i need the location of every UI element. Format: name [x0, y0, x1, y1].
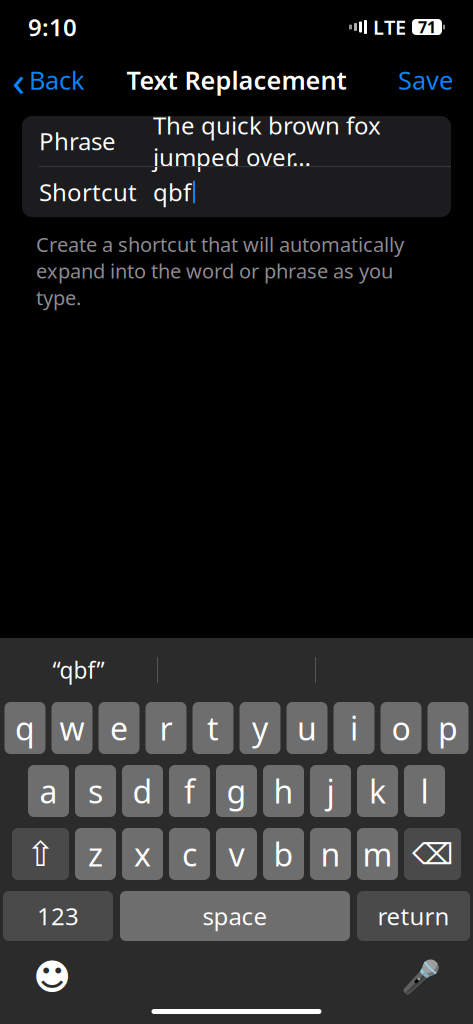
staticText: s — [88, 770, 103, 812]
staticText: LTE — [373, 14, 406, 40]
staticText: o — [391, 707, 410, 749]
staticText: x — [134, 833, 151, 875]
staticText: “qbf” — [52, 655, 104, 685]
staticText: f — [184, 770, 195, 812]
staticText: ⌫ — [412, 837, 453, 871]
button[interactable]: e — [98, 702, 139, 754]
staticText: b — [273, 833, 293, 875]
staticText: z — [88, 833, 103, 875]
staticText: 123 — [37, 900, 79, 932]
staticText: Shortcut — [39, 176, 137, 208]
button[interactable]: Emoji — [26, 951, 78, 1003]
button[interactable]: q — [4, 702, 45, 754]
button[interactable]: j — [310, 765, 351, 817]
button[interactable]: v — [216, 828, 257, 880]
button[interactable]: k — [357, 765, 398, 817]
button[interactable]: ‹ — [0, 46, 85, 114]
staticText: t — [207, 707, 219, 749]
button[interactable]: return — [357, 891, 470, 941]
staticText: 🎤 — [401, 959, 441, 995]
button[interactable]: a — [28, 765, 69, 817]
staticText: Text Replacement — [126, 63, 346, 97]
staticText: e — [110, 707, 128, 749]
staticText: g — [226, 770, 246, 812]
button[interactable]: n — [310, 828, 351, 880]
button[interactable]: m — [357, 828, 398, 880]
button[interactable]: 123 — [3, 891, 113, 941]
staticText: v — [228, 833, 244, 875]
button[interactable]: s — [75, 765, 116, 817]
staticText: k — [369, 770, 386, 812]
button[interactable]: r — [145, 702, 186, 754]
staticText: q — [15, 707, 35, 749]
button[interactable]: z — [75, 828, 116, 880]
button[interactable]: c — [169, 828, 210, 880]
staticText: Save — [398, 63, 453, 97]
button[interactable]: l — [404, 765, 445, 817]
staticText: u — [297, 707, 317, 749]
staticText: i — [350, 707, 358, 749]
staticText: d — [132, 770, 152, 812]
staticText: n — [320, 833, 340, 875]
staticText: c — [182, 833, 197, 875]
staticText: 71 — [418, 16, 436, 38]
button[interactable]: x — [122, 828, 163, 880]
staticText: l — [420, 770, 428, 812]
staticText: Back — [29, 63, 85, 97]
staticText: ⇧ — [26, 834, 55, 874]
button[interactable]: b — [263, 828, 304, 880]
button[interactable]: i — [333, 702, 374, 754]
staticText: return — [377, 900, 449, 932]
button[interactable]: Delete — [404, 828, 461, 880]
staticText: 9:10 — [28, 11, 77, 43]
staticText: space — [202, 900, 267, 932]
button[interactable]: p — [427, 702, 468, 754]
staticText: j — [326, 770, 334, 812]
button[interactable]: u — [286, 702, 327, 754]
staticText: y — [252, 707, 268, 749]
staticText: qbf — [153, 176, 191, 208]
staticText: a — [39, 770, 57, 812]
button[interactable]: f — [169, 765, 210, 817]
staticText: The quick brown fox jumped over… — [153, 109, 381, 173]
button[interactable]: d — [122, 765, 163, 817]
button[interactable]: t — [192, 702, 233, 754]
staticText: Create a shortcut that will automaticall… — [36, 231, 404, 311]
button[interactable]: Shortcut — [22, 167, 451, 217]
staticText: ☺ — [30, 953, 74, 1001]
button[interactable]: Shift — [12, 828, 69, 880]
staticText: p — [438, 707, 458, 749]
staticText: Phrase — [39, 125, 116, 157]
button[interactable]: Phrase — [22, 116, 451, 166]
button[interactable]: g — [216, 765, 257, 817]
button[interactable]: Save — [398, 57, 473, 103]
button[interactable]: y — [239, 702, 280, 754]
button[interactable]: w — [51, 702, 92, 754]
staticText: ‹ — [12, 52, 25, 108]
button[interactable]: h — [263, 765, 304, 817]
button[interactable]: Dictation — [395, 951, 447, 1003]
button[interactable]: “qbf” — [0, 648, 157, 692]
staticText: m — [362, 833, 392, 875]
button[interactable]: o — [380, 702, 421, 754]
button[interactable]: space — [120, 891, 350, 941]
staticText: w — [59, 707, 84, 749]
staticText: r — [159, 707, 172, 749]
staticText: h — [273, 770, 293, 812]
